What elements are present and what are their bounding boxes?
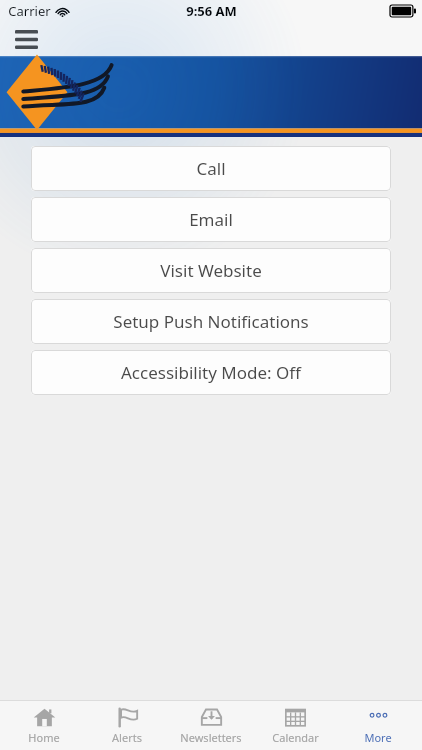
button[interactable]: More — [338, 701, 418, 750]
staticText: Setup Push Notifications — [113, 310, 309, 333]
staticText: More — [364, 730, 392, 745]
button[interactable]: Setup Push Notifications — [31, 299, 391, 344]
button[interactable]: Calendar — [255, 701, 335, 750]
staticText: Home — [28, 730, 60, 745]
staticText: Email — [189, 208, 233, 231]
staticText: Carrier — [8, 2, 51, 20]
button[interactable]: Visit Website — [31, 248, 391, 293]
staticText: Alerts — [112, 730, 142, 745]
button[interactable]: Home — [4, 701, 84, 750]
button[interactable]: Alerts — [87, 701, 167, 750]
staticText: 9:56 AM — [186, 2, 237, 20]
button[interactable]: Menu — [10, 25, 42, 53]
staticText: Newsletters — [180, 730, 242, 745]
staticText: Call — [196, 157, 226, 180]
staticText: Calendar — [272, 730, 319, 745]
button[interactable]: Newsletters — [171, 701, 251, 750]
button[interactable]: Call — [31, 146, 391, 191]
staticText: Visit Website — [160, 259, 262, 282]
button[interactable]: Email — [31, 197, 391, 242]
button[interactable]: Accessibility Mode: Off — [31, 350, 391, 395]
staticText: Accessibility Mode: Off — [121, 361, 301, 384]
